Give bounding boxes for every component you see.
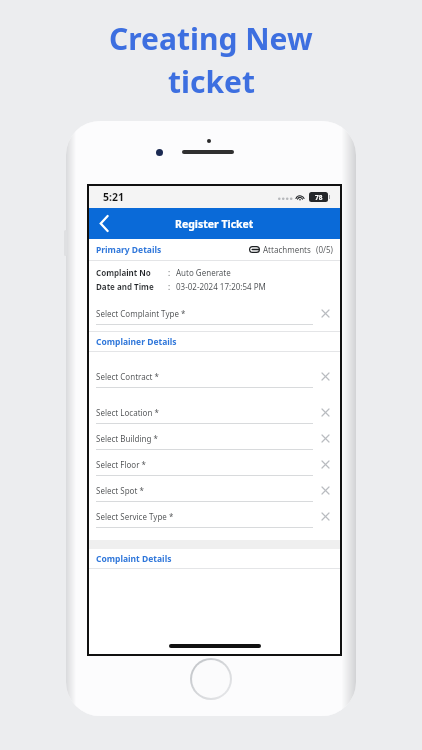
- staticText: Complainer Details: [96, 336, 177, 348]
- button[interactable]: Clear: [317, 305, 333, 321]
- button[interactable]: Select Complaint Type *: [96, 305, 333, 325]
- staticText: Select Contract *: [96, 371, 317, 382]
- button[interactable]: Clear: [317, 404, 333, 420]
- staticText: Select Complaint Type *: [96, 308, 317, 319]
- staticText: ticket: [168, 61, 255, 102]
- button[interactable]: Home: [192, 660, 230, 698]
- staticText: Register Ticket: [175, 217, 254, 231]
- staticText: 03-02-2024 17:20:54 PM: [176, 281, 266, 292]
- staticText: :: [168, 281, 171, 292]
- staticText: Creating New: [109, 18, 313, 59]
- staticText: Date and Time: [96, 281, 154, 292]
- staticText: 5:21: [103, 190, 124, 204]
- button[interactable]: Complaint Details: [89, 549, 340, 569]
- button[interactable]: Clear: [317, 368, 333, 384]
- staticText: Select Building *: [96, 433, 317, 444]
- staticText: (0/5): [316, 244, 333, 255]
- staticText: 78: [315, 193, 323, 202]
- staticText: :: [168, 267, 171, 278]
- button[interactable]: Clear: [317, 456, 333, 472]
- staticText: Select Location *: [96, 407, 317, 418]
- staticText: Select Service Type *: [96, 511, 317, 522]
- button[interactable]: Back: [89, 208, 119, 239]
- button[interactable]: Select Building *: [96, 430, 333, 450]
- button[interactable]: Select Contract *: [96, 368, 333, 388]
- button[interactable]: Primary Details: [96, 239, 333, 260]
- button[interactable]: Attachments: [249, 244, 333, 255]
- staticText: Select Spot *: [96, 485, 317, 496]
- staticText: Complaint Details: [96, 553, 172, 565]
- button[interactable]: Clear: [317, 430, 333, 446]
- button[interactable]: Clear: [317, 482, 333, 498]
- button[interactable]: Register Ticket: [89, 208, 340, 239]
- button[interactable]: Clear: [317, 508, 333, 524]
- staticText: Select Floor *: [96, 459, 317, 470]
- button[interactable]: Select Spot *: [96, 482, 333, 502]
- staticText: Attachments: [263, 244, 311, 255]
- staticText: Primary Details: [96, 244, 162, 256]
- button[interactable]: Select Service Type *: [96, 508, 333, 528]
- staticText: Complaint No: [96, 267, 151, 278]
- button[interactable]: Select Location *: [96, 404, 333, 424]
- button[interactable]: Complainer Details: [89, 332, 340, 352]
- staticText: Auto Generate: [176, 267, 231, 278]
- button[interactable]: Select Floor *: [96, 456, 333, 476]
